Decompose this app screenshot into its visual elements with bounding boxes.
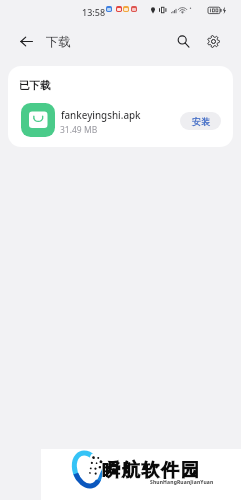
staticText: 瞬航软件园 [102,459,201,482]
staticText: fankeyingshi.apk [61,109,141,122]
staticText: 31.49 MB [60,124,98,136]
button[interactable]: Search [169,27,197,55]
button[interactable]: 安装 [180,112,221,130]
button[interactable]: Back [12,27,41,56]
staticText: 已下载 [19,79,51,92]
staticText: 下载 [46,34,71,50]
staticText: 安装 [192,116,210,127]
staticText: ShunHangRuanJianYuan [150,479,214,486]
button[interactable]: Settings [199,27,227,55]
staticText: 13:58 [82,6,106,18]
